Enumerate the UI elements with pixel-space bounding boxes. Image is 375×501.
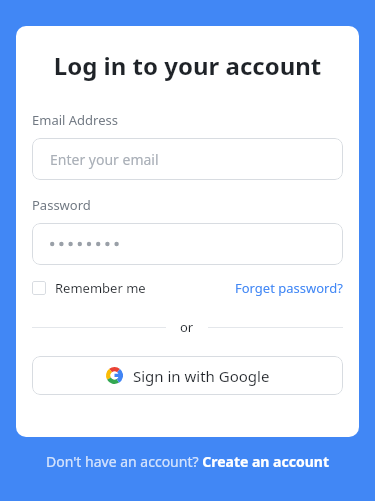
other: Google logo	[106, 367, 123, 384]
button[interactable]: Enter your email	[32, 138, 343, 180]
staticText: Password	[32, 196, 91, 214]
staticText: Remember me	[55, 279, 146, 297]
staticText: Log in to your account	[32, 49, 343, 82]
button[interactable]: Google logo	[32, 356, 343, 395]
button[interactable]: Remember me	[32, 279, 146, 297]
staticText: Don't have an account? Create an account	[46, 452, 329, 471]
staticText: Email Address	[32, 111, 118, 129]
button[interactable]	[32, 223, 343, 265]
staticText: Sign in with Google	[133, 366, 270, 386]
staticText: Enter your email	[50, 150, 159, 169]
staticText: Forget password?	[235, 279, 343, 297]
button[interactable]: Forget password?	[235, 279, 343, 297]
button[interactable]: Don't have an account? Create an account	[46, 452, 329, 471]
staticText: or	[180, 318, 194, 336]
